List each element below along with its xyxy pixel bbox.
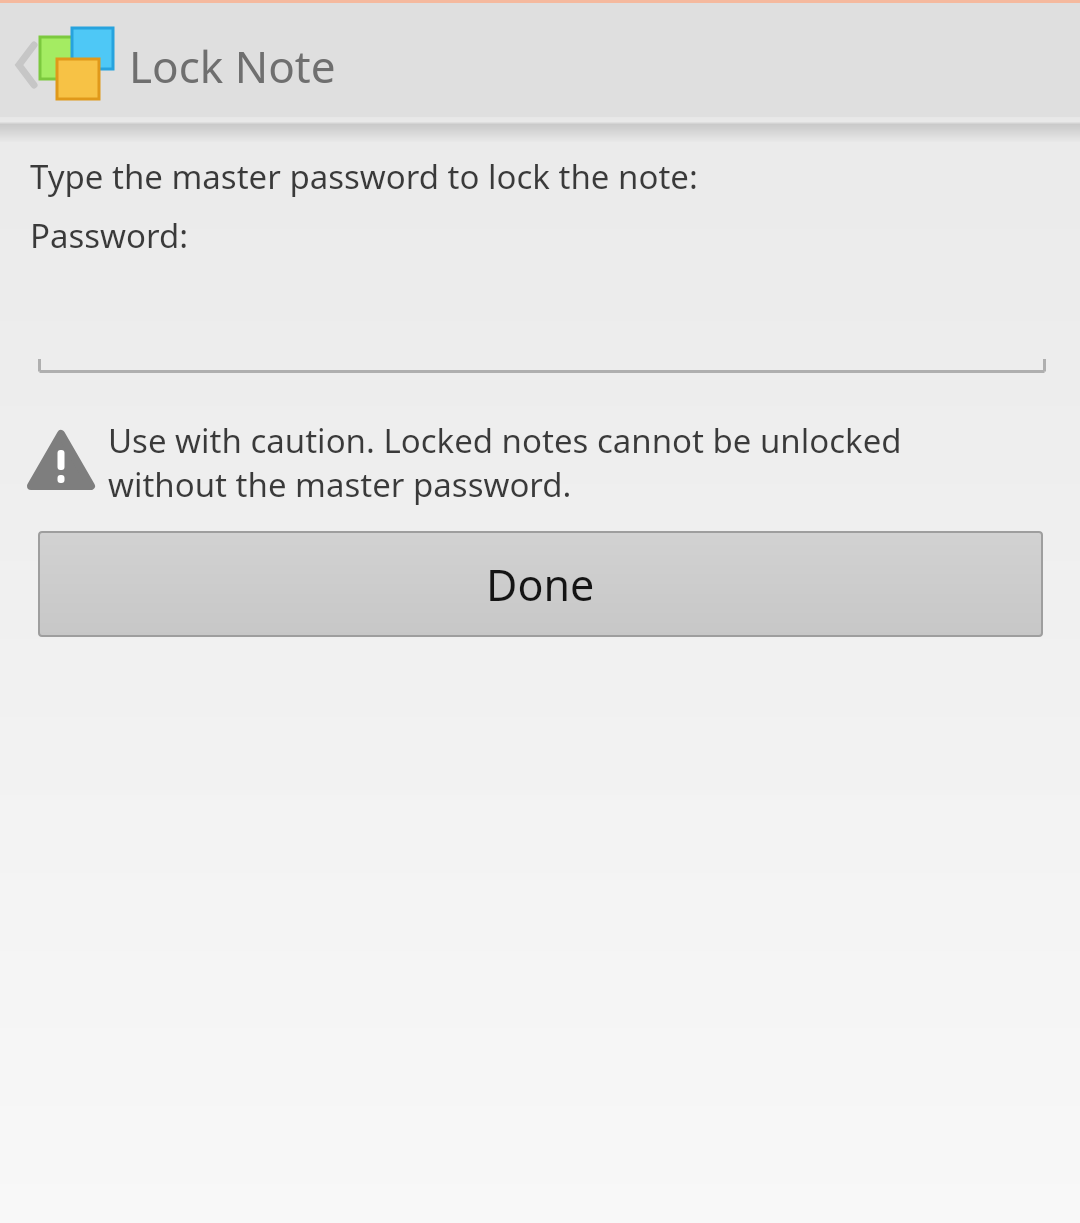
button[interactable]: Done — [38, 531, 1043, 637]
button[interactable] — [0, 30, 52, 100]
staticText: Use with caution. Locked notes cannot be… — [108, 418, 902, 463]
staticText: Done — [486, 555, 595, 614]
button[interactable] — [30, 270, 1080, 378]
staticText: without the master password. — [108, 462, 572, 507]
staticText: Lock Note — [129, 36, 336, 96]
staticText: Password: — [30, 213, 189, 258]
staticText: Type the master password to lock the not… — [30, 154, 698, 199]
